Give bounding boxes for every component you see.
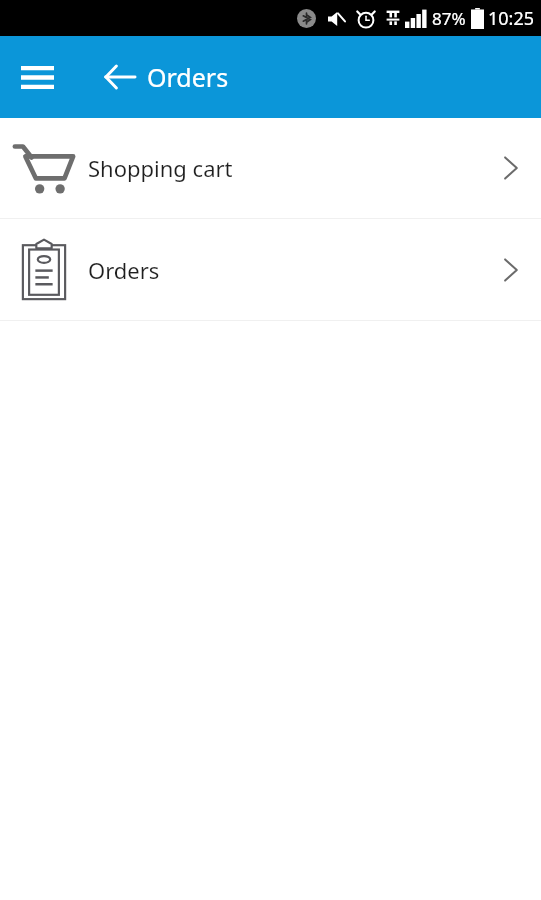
staticText: Shopping cart xyxy=(88,153,233,183)
button[interactable]: Back xyxy=(98,55,142,99)
staticText: Orders xyxy=(88,255,160,285)
button[interactable]: Orders xyxy=(0,219,541,320)
staticText: 87% xyxy=(432,7,466,30)
button[interactable]: Shopping cart xyxy=(0,118,541,218)
staticText: 10:25 xyxy=(488,6,535,31)
button[interactable]: Open navigation drawer xyxy=(13,53,61,101)
staticText: Orders xyxy=(147,60,229,94)
